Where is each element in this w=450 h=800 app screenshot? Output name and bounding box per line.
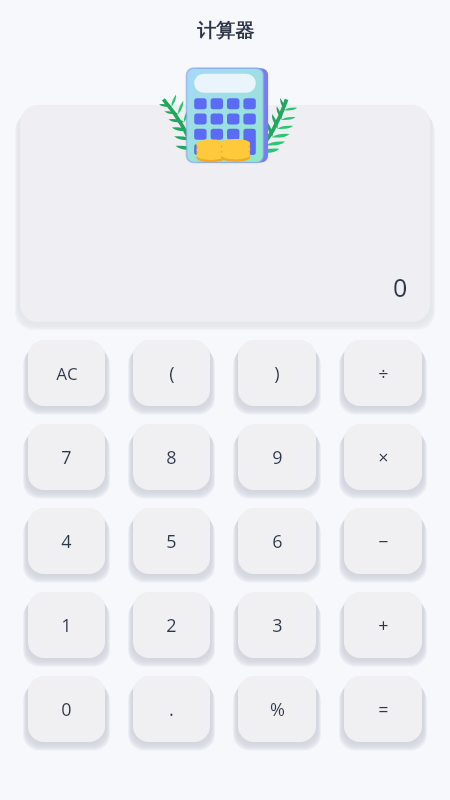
button[interactable]: AC bbox=[28, 340, 105, 406]
staticText: 6 bbox=[272, 529, 283, 554]
staticText: 2 bbox=[166, 613, 177, 638]
staticText: + bbox=[378, 613, 389, 638]
staticText: 9 bbox=[272, 445, 283, 470]
staticText: − bbox=[378, 529, 389, 554]
button[interactable]: 8 bbox=[133, 424, 210, 490]
button[interactable]: = bbox=[344, 676, 422, 742]
staticText: . bbox=[169, 697, 174, 722]
button[interactable]: 0 bbox=[28, 676, 105, 742]
staticText: 1 bbox=[61, 613, 72, 638]
staticText: % bbox=[270, 697, 285, 722]
button[interactable]: % bbox=[238, 676, 316, 742]
button[interactable]: . bbox=[133, 676, 210, 742]
button[interactable]: 9 bbox=[238, 424, 316, 490]
staticText: 0 bbox=[393, 270, 408, 304]
staticText: 7 bbox=[61, 445, 72, 470]
button[interactable]: 4 bbox=[28, 508, 105, 574]
button[interactable]: 2 bbox=[133, 592, 210, 658]
staticText: 计算器 bbox=[197, 19, 254, 43]
button[interactable]: 6 bbox=[238, 508, 316, 574]
button[interactable]: 7 bbox=[28, 424, 105, 490]
staticText: × bbox=[378, 445, 389, 470]
staticText: ÷ bbox=[378, 361, 389, 386]
staticText: AC bbox=[56, 362, 78, 385]
staticText: = bbox=[378, 697, 389, 722]
staticText: 4 bbox=[61, 529, 72, 554]
staticText: ) bbox=[274, 361, 280, 386]
button[interactable]: 1 bbox=[28, 592, 105, 658]
button[interactable]: ÷ bbox=[344, 340, 422, 406]
button[interactable]: + bbox=[344, 592, 422, 658]
button[interactable]: − bbox=[344, 508, 422, 574]
button[interactable]: × bbox=[344, 424, 422, 490]
staticText: 0 bbox=[61, 697, 72, 722]
button[interactable]: ) bbox=[238, 340, 316, 406]
staticText: 5 bbox=[166, 529, 177, 554]
button[interactable]: 5 bbox=[133, 508, 210, 574]
button[interactable]: ( bbox=[133, 340, 210, 406]
staticText: ( bbox=[169, 361, 175, 386]
staticText: 3 bbox=[272, 613, 283, 638]
button[interactable]: 3 bbox=[238, 592, 316, 658]
staticText: 8 bbox=[166, 445, 177, 470]
